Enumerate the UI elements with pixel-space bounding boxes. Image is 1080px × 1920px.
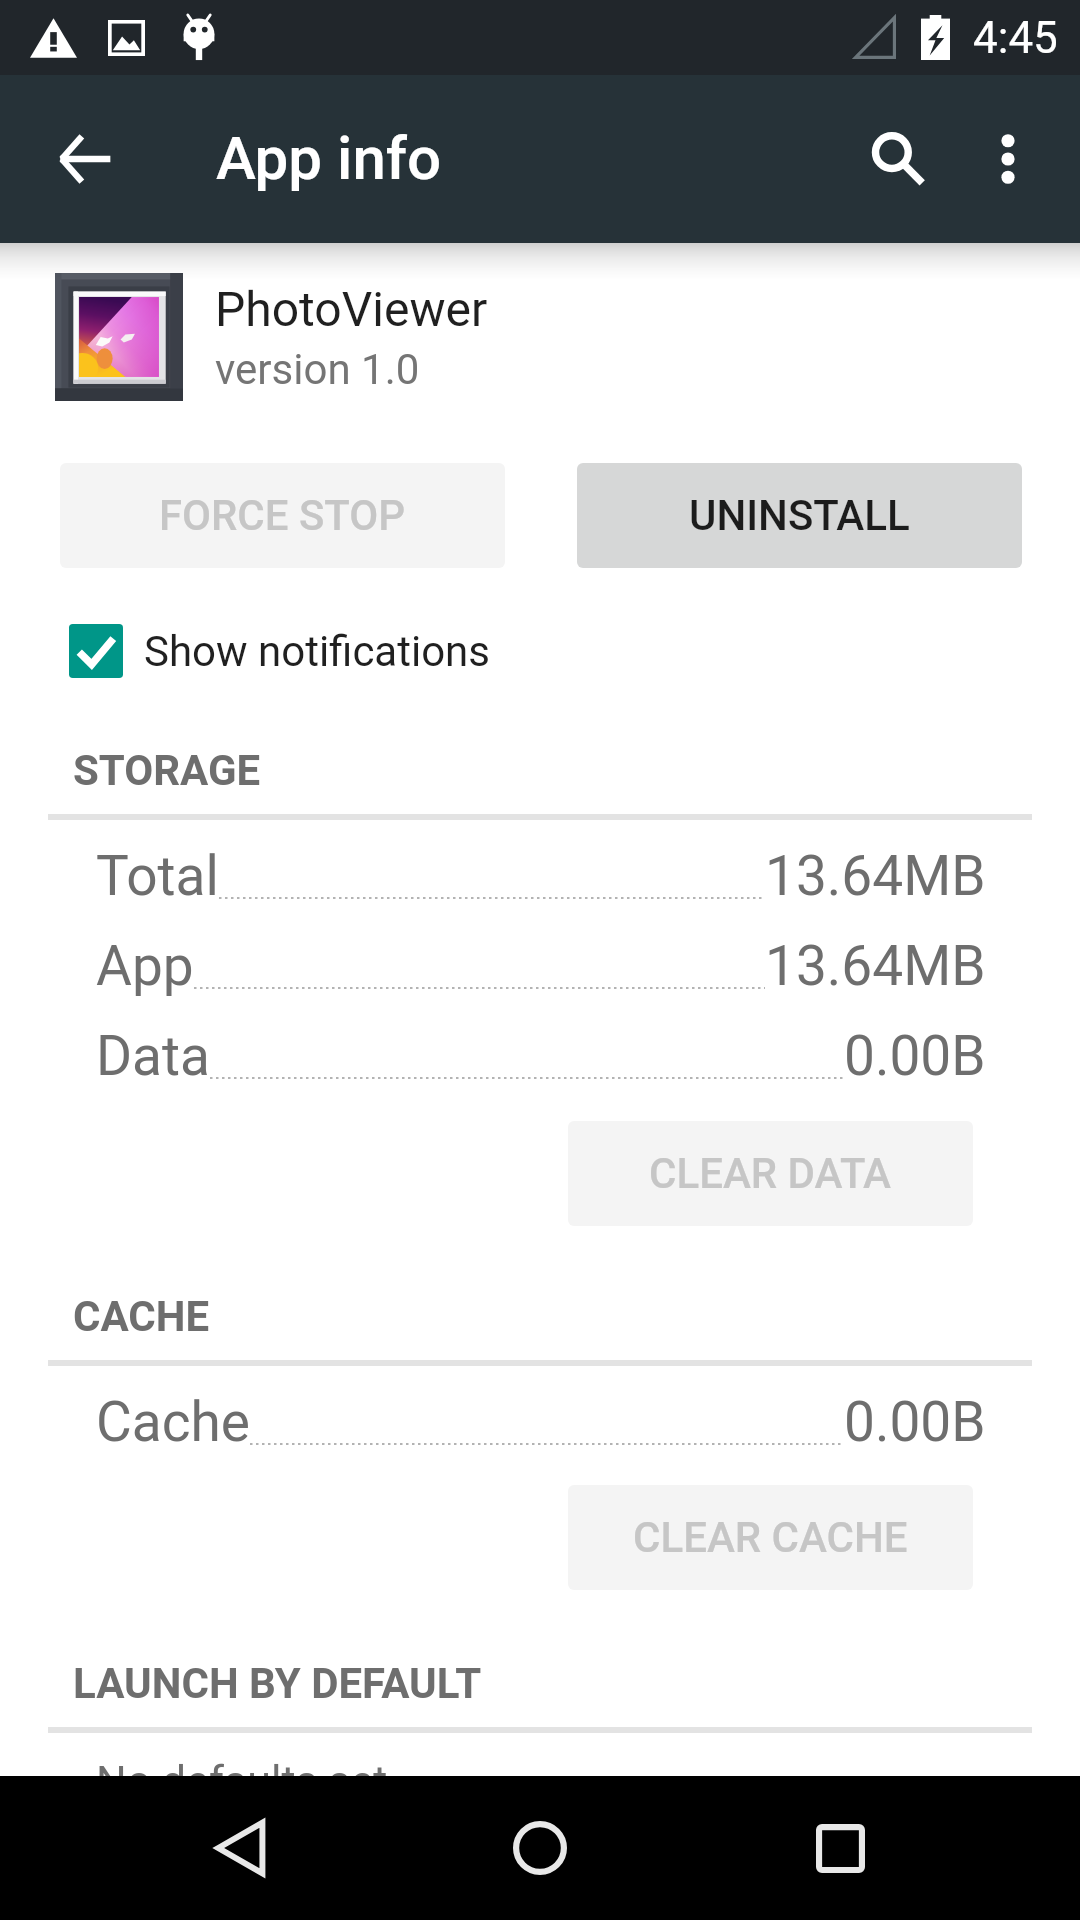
button[interactable]: Recent apps: [768, 1776, 912, 1920]
staticText: 4:45: [973, 12, 1058, 64]
button[interactable]: Search: [827, 87, 971, 231]
staticText: 0.00B: [844, 1024, 986, 1088]
button[interactable]: More options: [936, 87, 1080, 231]
staticText: No defaults set: [96, 1756, 388, 1806]
button[interactable]: Back: [168, 1776, 312, 1920]
button[interactable]: Home: [468, 1776, 612, 1920]
staticText: 0.00B: [844, 1390, 986, 1454]
staticText: 13.64MB: [765, 934, 986, 998]
staticText: Show notifications: [144, 627, 490, 676]
staticText: App: [96, 934, 194, 998]
staticText: version 1.0: [215, 345, 420, 394]
button[interactable]: CLEAR DATA: [568, 1121, 973, 1226]
staticText: 13.64MB: [765, 844, 986, 908]
button[interactable]: FORCE STOP: [60, 463, 505, 568]
staticText: PhotoViewer: [215, 281, 488, 337]
staticText: FORCE STOP: [159, 491, 406, 540]
staticText: CLEAR CACHE: [633, 1513, 908, 1562]
staticText: App info: [216, 123, 442, 193]
staticText: Total: [96, 844, 219, 908]
staticText: LAUNCH BY DEFAULT: [73, 1659, 482, 1708]
staticText: UNINSTALL: [689, 491, 910, 540]
staticText: Data: [96, 1024, 210, 1088]
button[interactable]: CLEAR CACHE: [568, 1485, 973, 1590]
staticText: Cache: [96, 1390, 250, 1454]
staticText: CLEAR DATA: [649, 1149, 892, 1198]
staticText: STORAGE: [73, 746, 261, 795]
staticText: CACHE: [73, 1292, 210, 1341]
button[interactable]: Navigate up: [12, 87, 156, 231]
button[interactable]: UNINSTALL: [577, 463, 1022, 568]
button[interactable]: Show notifications: [69, 624, 1080, 678]
